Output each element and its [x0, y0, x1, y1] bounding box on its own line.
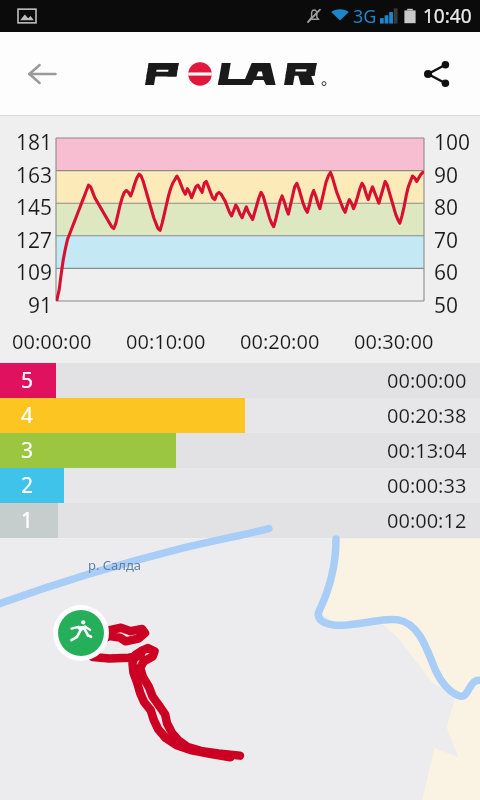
staticText: 00:00:00	[387, 367, 467, 394]
staticText: 3	[21, 436, 34, 465]
staticText: 4	[21, 401, 34, 430]
staticText: 60	[434, 258, 480, 287]
staticText: 3G	[353, 4, 377, 29]
staticText: 00:13:04	[387, 437, 467, 464]
staticText: 2	[21, 471, 34, 500]
staticText: 100	[434, 128, 480, 157]
staticText: 10:40	[423, 3, 472, 29]
staticText: 181	[0, 128, 52, 157]
staticText: 163	[0, 161, 52, 190]
staticText: 90	[434, 161, 480, 190]
staticText: р. Салда	[88, 556, 142, 574]
button[interactable]: Start location	[53, 605, 109, 661]
button[interactable]: 4	[0, 398, 480, 433]
staticText: 00:30:00	[354, 328, 434, 355]
staticText: 50	[434, 291, 480, 320]
staticText: 00:20:00	[240, 328, 320, 355]
button[interactable]: Back	[16, 48, 68, 100]
staticText: 00:00:12	[387, 507, 467, 534]
staticText: 70	[434, 226, 480, 255]
button[interactable]: 3	[0, 433, 480, 468]
staticText: 109	[0, 258, 52, 287]
button[interactable]: Share	[412, 49, 462, 99]
button[interactable]: 5	[0, 363, 480, 398]
staticText: 145	[0, 193, 52, 222]
staticText: 127	[0, 226, 52, 255]
staticText: 00:20:38	[387, 402, 467, 429]
button[interactable]: 1	[0, 503, 480, 538]
staticText: 00:00:33	[387, 472, 467, 499]
staticText: 00:10:00	[126, 328, 206, 355]
staticText: 80	[434, 193, 480, 222]
staticText: 1	[21, 506, 34, 535]
staticText: 00:00:00	[12, 328, 92, 355]
button[interactable]: 2	[0, 468, 480, 503]
staticText: 5	[21, 366, 34, 395]
staticText: 91	[0, 291, 52, 320]
